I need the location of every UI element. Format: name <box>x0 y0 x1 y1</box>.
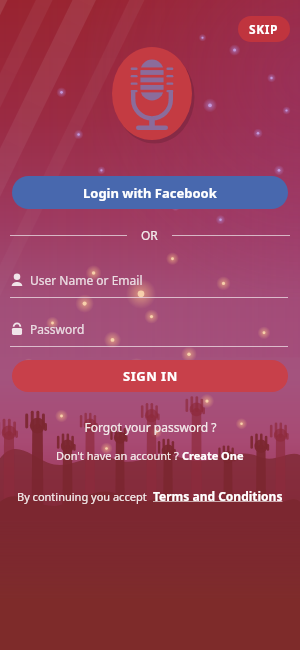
staticText: Don't have an account ? <box>56 448 182 463</box>
staticText: Forgot your password ? <box>84 419 217 435</box>
button[interactable]: SKIP <box>238 16 290 42</box>
button[interactable]: Login with Facebook <box>12 176 288 209</box>
staticText: Terms and Conditions <box>153 488 283 504</box>
staticText: By continuing you accept <box>17 489 153 504</box>
button[interactable]: Create One <box>182 448 244 463</box>
staticText: SKIP <box>249 21 279 37</box>
button[interactable]: SIGN IN <box>12 360 288 392</box>
button[interactable]: Password <box>10 321 288 347</box>
staticText: Password <box>30 321 85 337</box>
staticText: OR <box>141 227 158 243</box>
button[interactable]: Forgot your password ? <box>0 417 300 437</box>
staticText: Create One <box>182 448 244 463</box>
other: App logo microphone <box>112 47 192 140</box>
staticText: SIGN IN <box>123 367 178 385</box>
button[interactable]: Terms and Conditions <box>153 488 283 504</box>
staticText: User Name or Email <box>30 272 143 288</box>
button[interactable]: User Name or Email <box>10 272 288 298</box>
staticText: Login with Facebook <box>83 184 217 202</box>
